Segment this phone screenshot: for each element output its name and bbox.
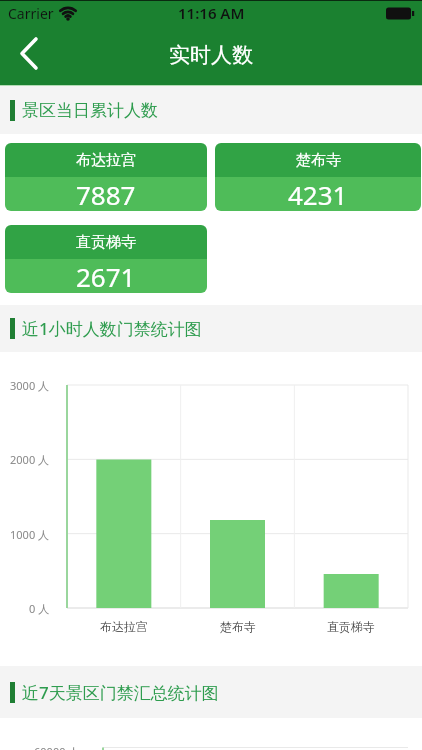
button[interactable]: 布达拉宫 [5, 143, 207, 211]
staticText: 布达拉宫 [76, 151, 136, 170]
staticText: 楚布寺 [220, 619, 256, 634]
staticText: 直贡梯寺 [327, 619, 375, 634]
button[interactable]: 楚布寺 [215, 143, 421, 211]
button[interactable] [0, 25, 60, 85]
staticText: 3000 人 [10, 378, 50, 393]
staticText: 60000 人 [34, 744, 80, 750]
staticText: 11:16 AM [178, 3, 245, 23]
staticText: 布达拉宫 [100, 619, 148, 634]
staticText: 7887 [76, 177, 136, 211]
staticText: 直贡梯寺 [76, 233, 136, 252]
button[interactable]: 直贡梯寺 [5, 225, 207, 293]
staticText: 4231 [288, 177, 348, 211]
staticText: 2671 [76, 259, 136, 293]
staticText: 0 人 [29, 601, 50, 616]
staticText: 景区当日累计人数 [22, 100, 158, 121]
staticText: 近7天景区门禁汇总统计图 [22, 681, 219, 704]
staticText: 1000 人 [10, 527, 50, 542]
staticText: 实时人数 [169, 42, 253, 68]
staticText: 楚布寺 [296, 151, 341, 170]
staticText: 近1小时人数门禁统计图 [22, 317, 202, 340]
staticText: 2000 人 [10, 452, 50, 467]
staticText: Carrier [8, 4, 54, 23]
